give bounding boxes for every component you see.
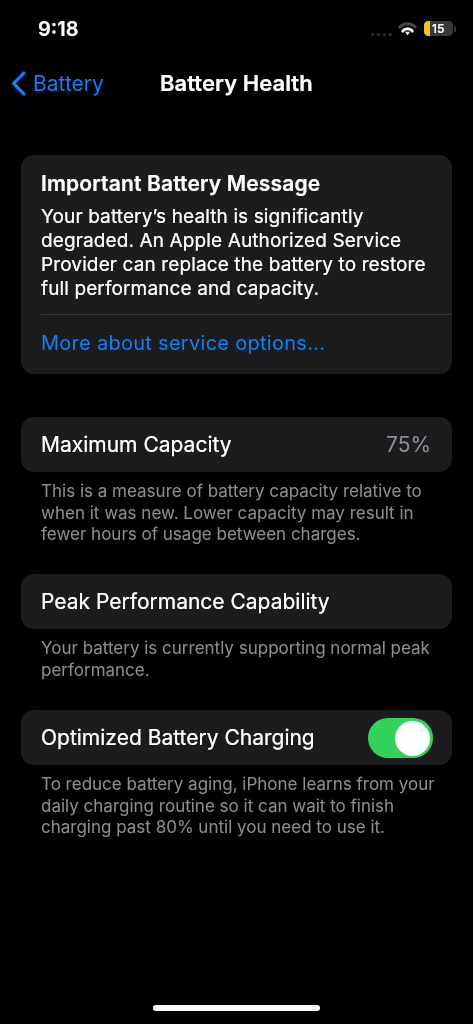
staticText: Optimized Battery Charging (41, 725, 315, 750)
staticText: This is a measure of battery capacity re… (41, 481, 443, 544)
staticText: Your battery is currently supporting nor… (41, 638, 443, 680)
staticText: 75% (386, 432, 432, 457)
staticText: Battery Health (160, 70, 313, 97)
other: Wi-Fi (399, 21, 416, 35)
staticText: Peak Performance Capability (41, 589, 330, 614)
staticText: To reduce battery aging, iPhone learns f… (41, 774, 443, 837)
staticText: Your battery’s health is significantly d… (41, 205, 432, 300)
other: Cellular signal (371, 31, 393, 38)
button[interactable]: Optimized Battery Charging (21, 710, 452, 765)
staticText: 15 (432, 21, 445, 36)
staticText: 9:18 (38, 17, 79, 41)
button[interactable]: Peak Performance Capability (21, 574, 452, 629)
button[interactable]: More about service options... (21, 315, 452, 374)
button[interactable]: Back to Battery (0, 71, 112, 96)
button[interactable]: Toggle Optimized Battery Charging (368, 718, 433, 758)
button[interactable]: Maximum Capacity (21, 417, 452, 472)
staticText: Maximum Capacity (41, 432, 232, 457)
staticText: Battery (33, 71, 104, 96)
staticText: Important Battery Message (41, 171, 321, 196)
staticText: More about service options... (41, 331, 326, 355)
